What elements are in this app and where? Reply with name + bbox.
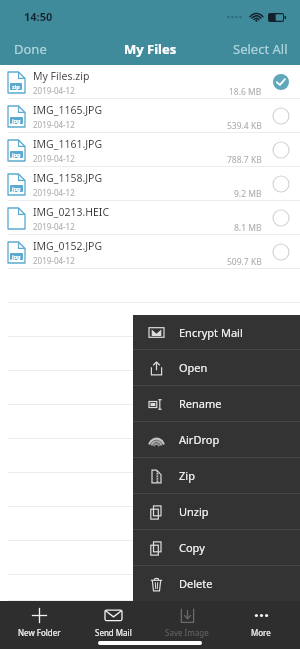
button[interactable]: Zip [133, 458, 300, 493]
button[interactable]: jpg [0, 167, 300, 201]
staticText: 2019-04-12 [33, 221, 75, 232]
staticText: Done [14, 40, 47, 58]
button[interactable]: Select All [221, 35, 300, 63]
button[interactable]: Not selected [272, 141, 290, 159]
staticText: Open [179, 360, 208, 375]
staticText: More [251, 627, 271, 638]
button[interactable]: Unzip [133, 494, 300, 529]
staticText: Select All [233, 40, 288, 58]
staticText: IMG_1158.JPG [33, 171, 103, 185]
staticText: My Files.zip [33, 69, 90, 83]
staticText: 509.7 KB [227, 256, 262, 268]
button[interactable]: zip [0, 65, 300, 99]
staticText: zip [12, 83, 20, 90]
staticText: 14:50 [24, 9, 53, 24]
button[interactable]: Rename [133, 386, 300, 421]
button[interactable]: jpg [0, 133, 300, 167]
staticText: 539.4 KB [227, 120, 262, 132]
button[interactable]: Delete [133, 566, 300, 601]
staticText: 18.6 MB [229, 86, 262, 98]
staticText: Copy [179, 540, 205, 555]
staticText: 9.2 MB [234, 188, 262, 200]
staticText: jpg [12, 151, 21, 158]
staticText: jpg [12, 185, 21, 192]
staticText: 2019-04-12 [33, 255, 75, 266]
button[interactable]: More [226, 605, 296, 640]
staticText: IMG_0152.JPG [33, 239, 103, 253]
staticText: 2019-04-12 [33, 85, 75, 96]
staticText: Delete [179, 576, 213, 591]
staticText: New Folder [18, 627, 61, 638]
button[interactable]: IMG_0213.HEIC [0, 201, 300, 235]
staticText: IMG_0213.HEIC [33, 205, 110, 219]
staticText: AirDrop [179, 432, 220, 447]
button[interactable]: Open [133, 350, 300, 385]
staticText: 788.7 KB [227, 154, 262, 166]
staticText: Unzip [179, 504, 209, 519]
button[interactable]: Done [0, 35, 61, 63]
staticText: IMG_1165.JPG [33, 103, 103, 117]
staticText: jpg [12, 253, 21, 260]
button: Save Image [152, 605, 222, 640]
staticText: Save Image [165, 627, 209, 638]
staticText: Encrypt Mail [179, 325, 243, 340]
button[interactable]: Not selected [272, 209, 290, 227]
staticText: My Files [124, 40, 177, 58]
staticText: IMG_1161.JPG [33, 137, 103, 151]
staticText: 2019-04-12 [33, 187, 75, 198]
staticText: Zip [179, 468, 195, 483]
button[interactable]: Selected [272, 73, 290, 91]
staticText: Rename [179, 396, 222, 411]
button[interactable]: jpg [0, 99, 300, 133]
button[interactable]: Encrypt Mail [133, 315, 300, 349]
staticText: Send Mail [95, 627, 132, 638]
staticText: 8.1 MB [234, 222, 262, 234]
staticText: 2019-04-12 [33, 119, 75, 130]
button[interactable]: New Folder [4, 605, 74, 640]
button[interactable]: Not selected [272, 243, 290, 261]
staticText: 2019-04-12 [33, 153, 75, 164]
button[interactable]: jpg [0, 235, 300, 269]
button[interactable]: Send Mail [78, 605, 148, 640]
button[interactable]: Copy [133, 530, 300, 565]
button[interactable]: AirDrop [133, 422, 300, 457]
button[interactable]: Not selected [272, 175, 290, 193]
button[interactable]: Not selected [272, 107, 290, 125]
staticText: jpg [12, 117, 21, 124]
